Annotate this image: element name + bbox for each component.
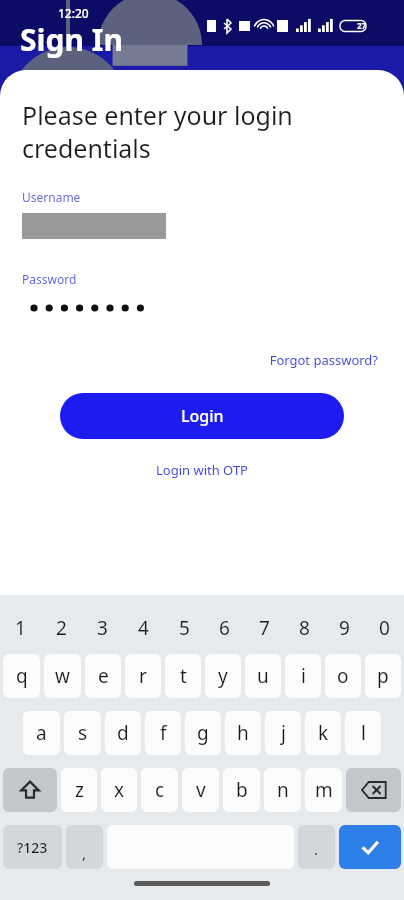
button[interactable]: t xyxy=(165,654,201,698)
button[interactable]: 3 xyxy=(82,611,123,645)
button[interactable]: 1 xyxy=(0,611,41,645)
button[interactable]: k xyxy=(305,711,341,755)
button[interactable]: o xyxy=(325,654,361,698)
staticText: h xyxy=(237,720,249,746)
staticText: j xyxy=(281,720,286,746)
staticText: Please enter your login credentials xyxy=(22,98,382,165)
button[interactable]: l xyxy=(345,711,381,755)
button[interactable]: n xyxy=(264,768,301,812)
staticText: , xyxy=(82,843,87,863)
staticText: w xyxy=(55,663,70,689)
staticText: 12:20 xyxy=(58,5,89,21)
staticText: Password xyxy=(22,271,77,287)
staticText: b xyxy=(236,777,248,803)
staticText: 9 xyxy=(339,615,350,641)
staticText: l xyxy=(361,720,366,746)
staticText: d xyxy=(117,720,129,746)
button[interactable] xyxy=(22,297,382,319)
button[interactable]: 8 xyxy=(284,611,324,645)
button[interactable]: p xyxy=(365,654,401,698)
button[interactable]: x xyxy=(101,768,137,812)
staticText: m xyxy=(315,777,333,803)
staticText: u xyxy=(257,663,269,689)
button[interactable]: 0 xyxy=(364,611,404,645)
staticText: i xyxy=(301,663,306,689)
button[interactable]: e xyxy=(85,654,121,698)
staticText: t xyxy=(180,663,187,689)
staticText: 0 xyxy=(379,615,390,641)
button[interactable]: d xyxy=(105,711,141,755)
staticText: k xyxy=(318,720,329,746)
staticText: . xyxy=(314,839,319,859)
button[interactable]: y xyxy=(205,654,241,698)
button[interactable]: z xyxy=(61,768,97,812)
staticText: c xyxy=(155,777,165,803)
button[interactable]: Login with OTP xyxy=(152,457,252,483)
button[interactable]: 9 xyxy=(324,611,364,645)
button[interactable]: 5 xyxy=(164,611,204,645)
staticText: 1 xyxy=(15,615,26,641)
staticText: 27 xyxy=(357,20,367,31)
staticText: ?123 xyxy=(17,838,48,857)
staticText: f xyxy=(160,720,167,746)
staticText: 2 xyxy=(56,615,67,641)
staticText: q xyxy=(16,663,28,689)
staticText: p xyxy=(377,663,389,689)
button[interactable]: h xyxy=(225,711,261,755)
button[interactable]: m xyxy=(305,768,342,812)
button[interactable]: r xyxy=(125,654,161,698)
button[interactable]: . xyxy=(298,825,335,869)
button[interactable]: q xyxy=(3,654,40,698)
staticText: s xyxy=(78,720,88,746)
staticText: 6 xyxy=(219,615,230,641)
staticText: r xyxy=(139,663,147,689)
staticText: z xyxy=(75,777,84,803)
button[interactable]: f xyxy=(145,711,181,755)
staticText: 3 xyxy=(97,615,108,641)
staticText: 4 xyxy=(138,615,149,641)
button[interactable]: 6 xyxy=(204,611,244,645)
button[interactable]: Backspace xyxy=(346,768,401,812)
button[interactable]: w xyxy=(44,654,81,698)
button[interactable]: g xyxy=(185,711,221,755)
staticText: a xyxy=(36,720,47,746)
button[interactable]: Shift xyxy=(3,768,57,812)
button[interactable]: Login xyxy=(60,393,344,439)
staticText: g xyxy=(197,720,209,746)
staticText: v xyxy=(196,777,206,803)
staticText: x xyxy=(114,777,125,803)
button[interactable]: v xyxy=(182,768,219,812)
button[interactable]: 4 xyxy=(123,611,164,645)
staticText: 7 xyxy=(259,615,270,641)
button[interactable]: u xyxy=(245,654,281,698)
button[interactable]: Forgot password? xyxy=(265,347,382,373)
button[interactable]: i xyxy=(285,654,321,698)
button[interactable]: , xyxy=(66,825,103,869)
staticText: e xyxy=(98,663,109,689)
button[interactable]: c xyxy=(141,768,178,812)
button[interactable]: ?123 xyxy=(3,825,62,869)
button[interactable]: 2 xyxy=(41,611,82,645)
staticText: Sign In xyxy=(20,19,123,60)
button[interactable]: a xyxy=(23,711,60,755)
button[interactable]: b xyxy=(223,768,260,812)
button[interactable]: Enter xyxy=(339,825,401,869)
button[interactable]: 7 xyxy=(244,611,284,645)
staticText: y xyxy=(218,663,228,689)
button[interactable]: j xyxy=(265,711,301,755)
staticText: 5 xyxy=(179,615,190,641)
staticText: o xyxy=(337,663,349,689)
button[interactable]: s xyxy=(64,711,101,755)
staticText: Username xyxy=(22,189,81,205)
staticText: n xyxy=(277,777,289,803)
staticText: 8 xyxy=(299,615,310,641)
staticText: Login xyxy=(181,405,224,427)
